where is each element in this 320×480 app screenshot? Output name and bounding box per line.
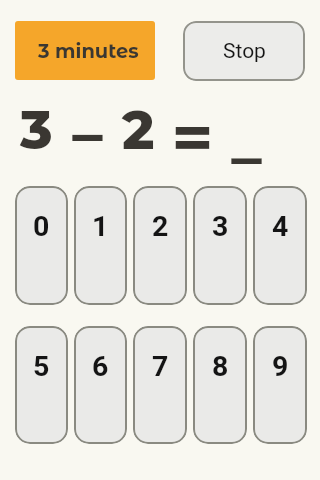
staticText: 3 minutes [38, 39, 139, 63]
staticText: Stop [223, 39, 266, 64]
button[interactable]: 2 [133, 186, 187, 305]
button[interactable]: 5 [15, 326, 68, 444]
button[interactable]: 3 [193, 186, 247, 305]
button[interactable]: 1 [74, 186, 127, 305]
staticText: = [172, 105, 213, 171]
button[interactable]: Stop [183, 21, 305, 81]
button[interactable]: 8 [193, 326, 247, 444]
staticText: 3 [20, 97, 53, 163]
staticText: 9 [272, 350, 289, 383]
staticText: 3 [212, 210, 229, 243]
staticText: 5 [33, 350, 50, 383]
button[interactable]: 4 [253, 186, 307, 305]
staticText: 8 [212, 350, 229, 383]
staticText: 4 [272, 210, 289, 243]
staticText: 2 [122, 97, 155, 163]
staticText: 2 [152, 210, 169, 243]
button[interactable]: 6 [74, 326, 127, 444]
staticText: 1 [92, 210, 109, 243]
staticText: _ [231, 106, 262, 172]
button[interactable]: 7 [133, 326, 187, 444]
staticText: 0 [33, 210, 50, 243]
staticText: 6 [92, 350, 109, 383]
button[interactable]: 3 minutes [15, 21, 155, 80]
staticText: 7 [152, 350, 169, 383]
button[interactable]: 9 [253, 326, 307, 444]
button[interactable]: 0 [15, 186, 68, 305]
staticText: – [72, 101, 103, 167]
